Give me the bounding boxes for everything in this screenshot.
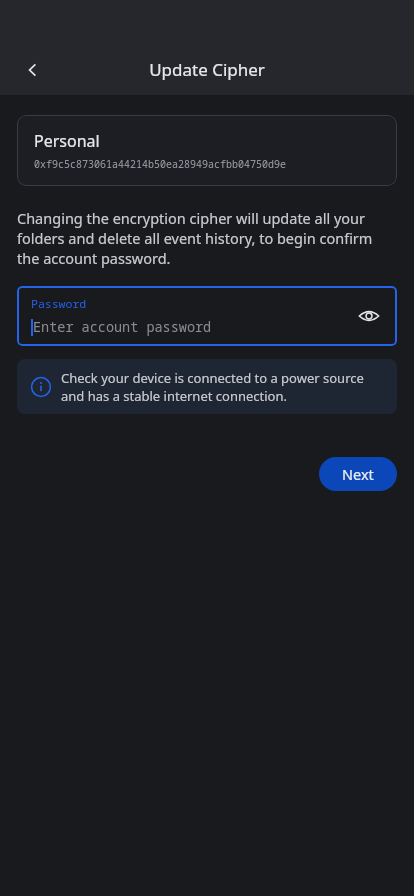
button[interactable]: Show password xyxy=(353,300,385,332)
button[interactable]: Back xyxy=(13,50,53,90)
button[interactable]: Check your device is connected to a powe… xyxy=(17,359,397,414)
staticText: Check your device is connected to a powe… xyxy=(61,369,383,405)
staticText: Personal xyxy=(34,130,100,152)
staticText: Password xyxy=(31,296,87,312)
staticText: Update Cipher xyxy=(149,58,265,81)
button[interactable]: Password xyxy=(17,286,397,346)
staticText: Changing the encryption cipher will upda… xyxy=(17,208,397,268)
staticText: Enter account password xyxy=(33,318,212,336)
staticText: 0xf9c5c873061a44214b50ea28949acfbb04750d… xyxy=(34,157,286,171)
button[interactable]: Next xyxy=(319,457,397,491)
button[interactable]: Personal xyxy=(17,115,397,186)
staticText: Next xyxy=(342,464,374,484)
